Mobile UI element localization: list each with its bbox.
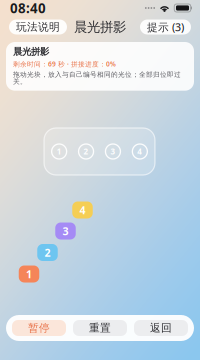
staticText: 1 bbox=[57, 146, 62, 157]
staticText: 晨光拼影 bbox=[74, 19, 126, 35]
staticText: 玩法说明 bbox=[16, 20, 60, 33]
button[interactable]: 返回 bbox=[134, 320, 188, 336]
staticText: 3 bbox=[62, 224, 68, 238]
staticText: 拖动光块，放入与自己编号相同的光位；全部归位即过关。 bbox=[13, 70, 181, 86]
staticText: 提示 (3) bbox=[147, 20, 184, 34]
button[interactable]: 2 bbox=[37, 244, 58, 261]
staticText: 08:40 bbox=[10, 0, 46, 17]
staticText: 4 bbox=[137, 146, 142, 157]
button[interactable]: 4 bbox=[72, 201, 93, 218]
button[interactable]: 3 bbox=[55, 222, 76, 239]
button[interactable]: 玩法说明 bbox=[9, 19, 67, 34]
button[interactable]: 暂停 bbox=[12, 320, 66, 336]
button[interactable]: 提示 (3) bbox=[140, 19, 191, 34]
staticText: 剩余时间：69 秒 · 拼接进度：0% bbox=[13, 59, 116, 68]
staticText: 2 bbox=[83, 146, 88, 157]
staticText: 4 bbox=[79, 203, 85, 217]
staticText: 重置 bbox=[89, 321, 111, 334]
staticText: 返回 bbox=[150, 321, 172, 334]
staticText: 晨光拼影 bbox=[13, 46, 49, 57]
button[interactable]: 1 bbox=[19, 265, 39, 282]
staticText: 暂停 bbox=[28, 321, 50, 334]
staticText: 2 bbox=[44, 245, 50, 260]
staticText: 1 bbox=[26, 267, 32, 281]
button[interactable]: 重置 bbox=[73, 320, 127, 336]
staticText: 3 bbox=[110, 146, 115, 157]
